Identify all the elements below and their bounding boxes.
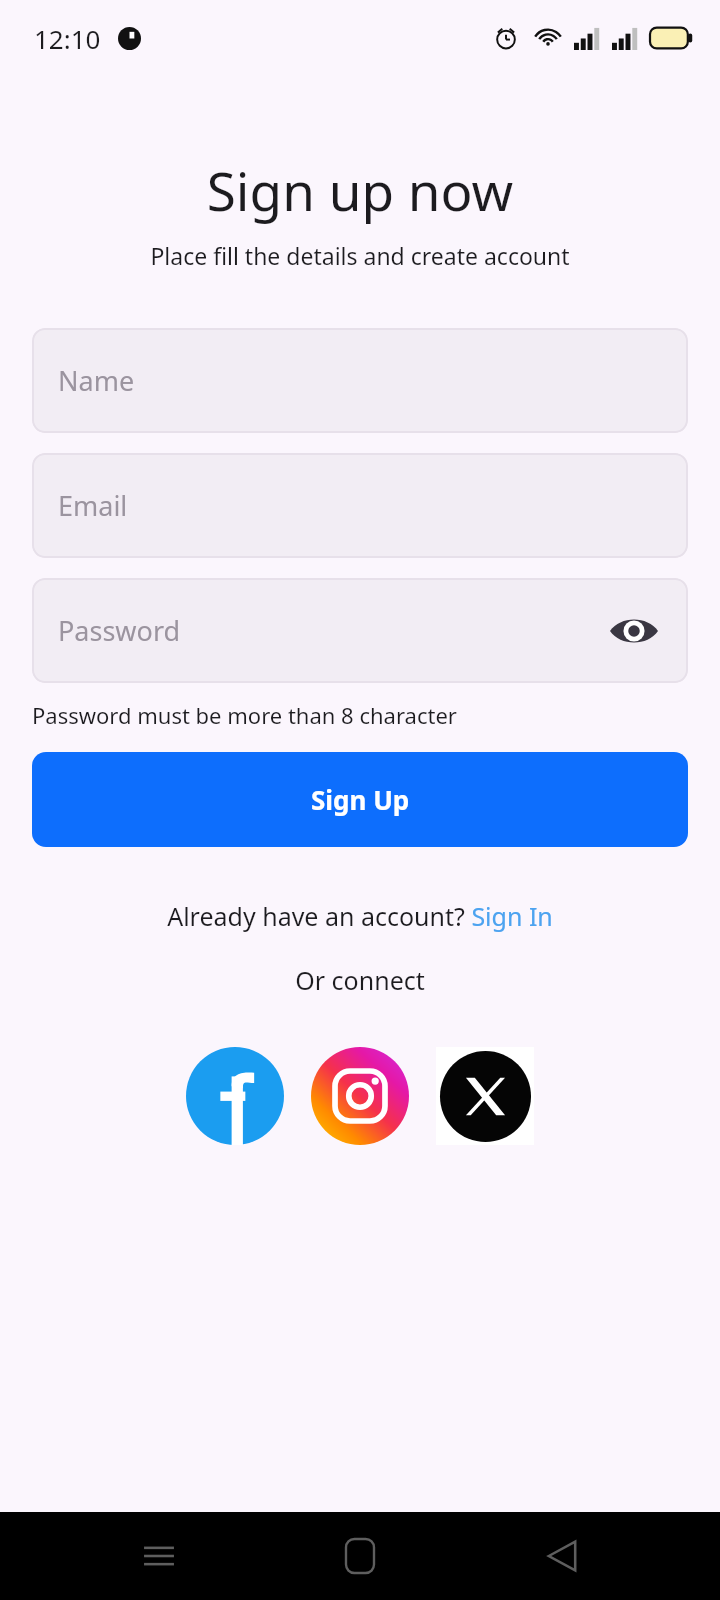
staticText: Already have an account? Sign In — [167, 899, 553, 933]
staticText: Sign Up — [311, 782, 410, 817]
button[interactable]: Already have an account? Sign In — [0, 899, 720, 933]
staticText: Password must be more than 8 character — [32, 700, 457, 730]
button[interactable]: Password — [32, 578, 688, 683]
staticText: Name — [58, 362, 135, 399]
button[interactable]: Name — [32, 328, 688, 433]
button[interactable]: Sign up with Instagram — [304, 1040, 416, 1152]
button[interactable]: Sign up with X — [429, 1040, 541, 1152]
staticText: Email — [58, 487, 128, 524]
staticText: Or connect — [0, 963, 720, 997]
staticText: Password — [58, 612, 181, 649]
button[interactable]: Home — [317, 1513, 403, 1599]
staticText: 12:10 — [34, 21, 101, 56]
staticText: Sign up now — [0, 154, 720, 226]
button[interactable]: Sign up with Facebook — [179, 1040, 291, 1152]
button[interactable]: Recent apps — [116, 1513, 202, 1599]
button[interactable]: Email — [32, 453, 688, 558]
button[interactable]: Sign Up — [32, 752, 688, 847]
button[interactable]: Show password — [608, 605, 660, 657]
staticText: Place fill the details and create accoun… — [0, 240, 720, 271]
button[interactable]: Back — [519, 1513, 605, 1599]
